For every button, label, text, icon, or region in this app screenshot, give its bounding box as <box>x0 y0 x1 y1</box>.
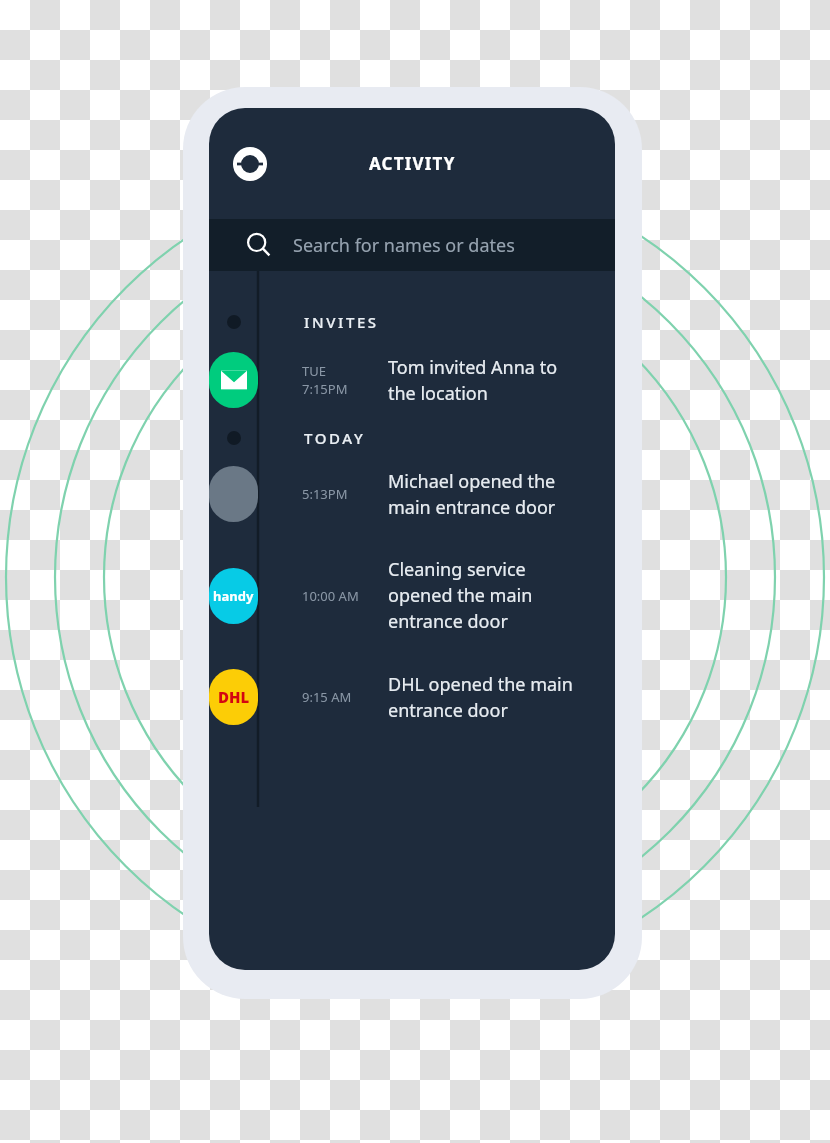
staticText: handy <box>213 587 254 605</box>
staticText: 5:13PM <box>302 485 348 503</box>
button[interactable]: Menu <box>227 141 273 187</box>
staticText: INVITES <box>304 312 379 332</box>
button[interactable]: DHL <box>209 669 615 725</box>
button[interactable]: TUE 7:15PM <box>209 352 615 408</box>
button[interactable]: Search for names or dates <box>209 219 615 271</box>
staticText: TODAY <box>304 428 366 448</box>
staticText: DHL opened the main entrance door <box>388 672 588 723</box>
staticText: Michael opened the main entrance door <box>388 469 588 520</box>
button[interactable]: handy <box>209 557 615 634</box>
staticText: Cleaning service opened the main entranc… <box>388 557 588 634</box>
staticText: Tom invited Anna to the location <box>388 355 588 406</box>
staticText: ACTIVITY <box>369 152 456 175</box>
staticText: 9:15 AM <box>302 688 352 706</box>
staticText: 10:00 AM <box>302 587 359 605</box>
staticText: Search for names or dates <box>293 233 515 258</box>
staticText: DHL <box>218 687 250 707</box>
staticText: TUE 7:15PM <box>302 362 348 398</box>
button[interactable]: 5:13PM <box>209 466 615 522</box>
